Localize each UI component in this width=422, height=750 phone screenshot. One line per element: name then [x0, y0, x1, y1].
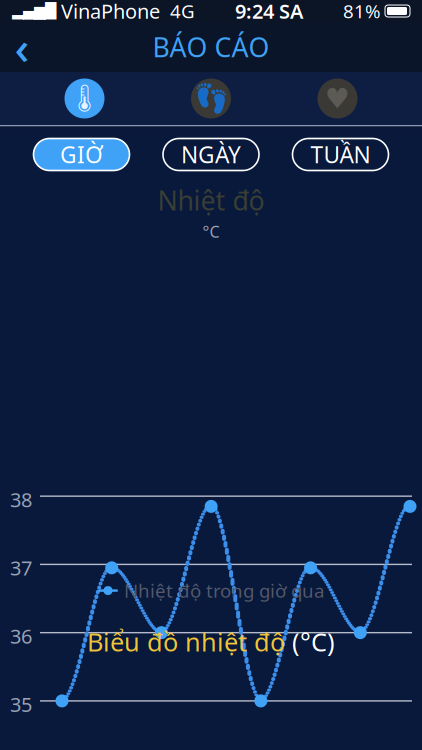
staticText: °C [202, 221, 219, 242]
staticText: Biểu đồ nhiệt độ [87, 625, 285, 659]
staticText: Nhiệt độ [157, 182, 264, 218]
staticText: 38 [10, 486, 32, 513]
button[interactable]: Bước chân [169, 72, 253, 124]
button[interactable]: TUẦN [292, 138, 388, 170]
staticText: Nhiệt độ trong giờ qua [124, 578, 324, 603]
staticText: 37 [10, 554, 32, 581]
staticText: NGÀY [181, 139, 241, 169]
staticText: ‹ [14, 17, 29, 77]
staticText: 4G [160, 0, 195, 23]
staticText: ♥ [325, 83, 350, 114]
staticText: 9:24 SA [235, 0, 303, 24]
staticText: 👣 [193, 82, 228, 114]
button[interactable]: GIỜ [33, 138, 129, 170]
staticText: TUẦN [310, 139, 370, 169]
staticText: 🌡 [67, 83, 101, 114]
staticText: 35 [10, 691, 32, 717]
staticText: VinaPhone [56, 0, 160, 24]
staticText: (°C) [285, 625, 335, 659]
staticText: 81% [343, 0, 381, 23]
button[interactable]: Back [0, 25, 44, 69]
button[interactable]: Nhịp tim [295, 72, 379, 124]
button[interactable]: Nhiệt độ [42, 72, 126, 124]
staticText: ▂▄▆█ [12, 3, 56, 19]
staticText: 36 [10, 623, 32, 649]
button[interactable]: NGÀY [163, 138, 259, 170]
staticText: GIỜ [60, 139, 103, 169]
staticText: BÁO CÁO [152, 29, 269, 65]
